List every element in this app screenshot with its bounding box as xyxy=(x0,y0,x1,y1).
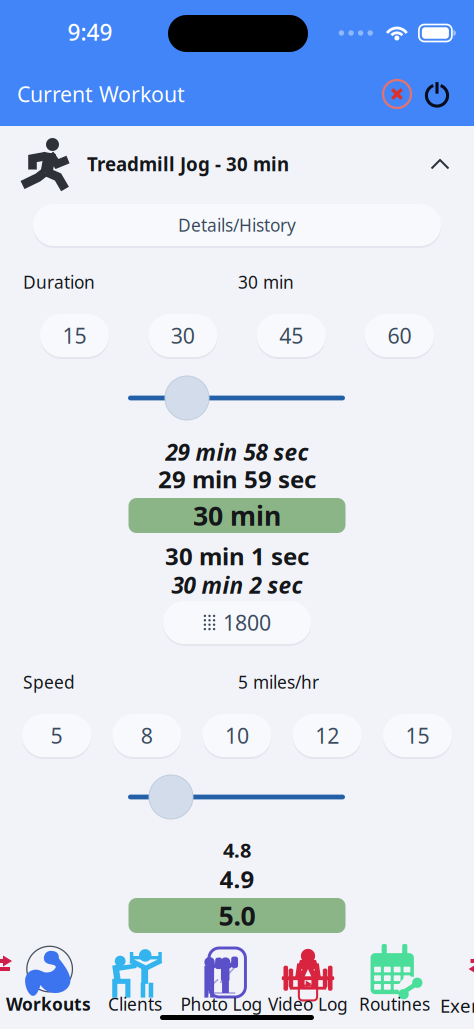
button[interactable]: Exercises xyxy=(440,940,474,1018)
staticText: 60 xyxy=(387,321,411,350)
staticText: Speed xyxy=(23,670,75,693)
button[interactable]: 10 xyxy=(202,714,271,757)
button[interactable]: 5 xyxy=(22,714,91,757)
staticText: 8 xyxy=(141,721,153,750)
staticText: 45 xyxy=(279,321,303,350)
staticText: 10 xyxy=(225,721,249,750)
staticText: Exercises xyxy=(440,993,474,1018)
button[interactable]: Routines xyxy=(351,940,437,1013)
staticText: 12 xyxy=(315,721,339,750)
button[interactable]: 1800 xyxy=(163,601,311,644)
staticText: 29 min 58 sec xyxy=(165,437,308,467)
button[interactable]: Video Log xyxy=(265,940,351,1013)
staticText: 30 min 2 sec xyxy=(171,570,302,600)
staticText: 30 xyxy=(171,321,195,350)
staticText: Treadmill Jog - 30 min xyxy=(87,152,289,176)
staticText: Workouts xyxy=(6,992,91,1015)
staticText: 29 min 59 sec xyxy=(158,463,316,495)
staticText: Video Log xyxy=(268,992,348,1015)
staticText: 4.8 xyxy=(223,837,251,863)
staticText: 5.0 xyxy=(218,898,255,933)
staticText: Clients xyxy=(108,992,162,1015)
staticText: Duration xyxy=(23,270,95,293)
staticText: 5 miles/hr xyxy=(238,670,319,693)
button[interactable]: 15 xyxy=(40,314,109,357)
staticText: 30 min xyxy=(193,498,281,533)
staticText: 1800 xyxy=(223,608,271,637)
button[interactable]: Clients xyxy=(92,940,178,1013)
button[interactable]: 45 xyxy=(257,314,326,357)
staticText: Routines xyxy=(359,992,430,1015)
button[interactable]: 8 xyxy=(112,714,181,757)
button[interactable]: Power off xyxy=(417,70,457,117)
button[interactable]: 30 xyxy=(148,314,217,357)
button[interactable]: Exercises xyxy=(0,948,21,982)
staticText: Details/History xyxy=(178,213,296,236)
button[interactable]: Photo Log xyxy=(178,940,264,1013)
staticText: Photo Log xyxy=(180,992,262,1015)
button[interactable]: 15 xyxy=(383,714,452,757)
staticText: 30 min xyxy=(238,270,294,293)
button[interactable]: Details/History xyxy=(33,204,441,246)
staticText: 5 xyxy=(50,721,62,750)
button[interactable]: Cancel workout xyxy=(377,71,417,117)
staticText: 15 xyxy=(405,721,429,750)
staticText: 15 xyxy=(62,321,86,350)
staticText: 4.9 xyxy=(219,863,254,895)
staticText: Current Workout xyxy=(17,80,185,108)
staticText: 30 min 1 sec xyxy=(165,540,309,572)
staticText: 9:49 xyxy=(67,17,112,47)
button[interactable]: Workouts xyxy=(5,940,91,1013)
button[interactable]: 12 xyxy=(293,714,362,757)
button[interactable]: 60 xyxy=(365,314,434,357)
